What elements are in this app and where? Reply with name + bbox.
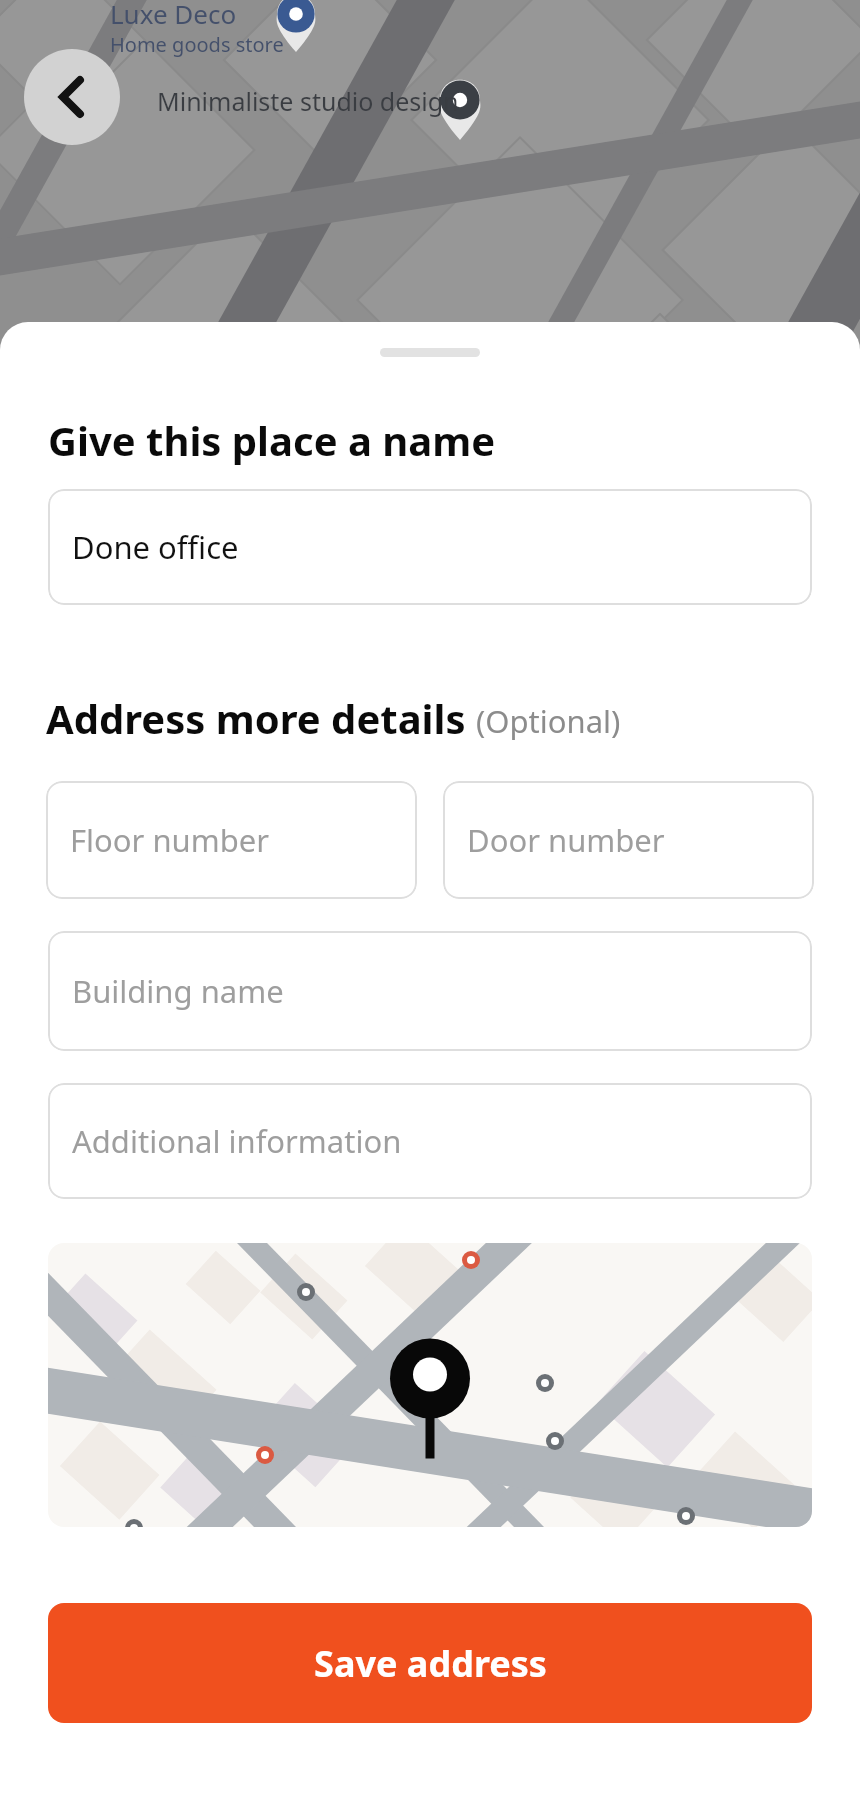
staticText: Floor number xyxy=(70,819,270,861)
staticText: Save address xyxy=(314,1639,547,1688)
staticText: Done office xyxy=(72,526,239,568)
button[interactable]: Save address xyxy=(48,1603,812,1723)
button[interactable]: Floor number xyxy=(46,781,417,899)
staticText: Address more details xyxy=(46,691,466,745)
staticText: Minimaliste studio design xyxy=(157,84,459,118)
staticText: Door number xyxy=(467,819,665,861)
staticText: Luxe Deco xyxy=(110,0,237,31)
button[interactable]: Done office xyxy=(48,489,812,605)
staticText: Building name xyxy=(72,970,284,1012)
staticText: Home goods store xyxy=(110,31,284,58)
button[interactable]: Building name xyxy=(48,931,812,1051)
staticText: Additional information xyxy=(72,1120,402,1162)
button[interactable]: Back xyxy=(24,49,120,145)
staticText: Give this place a name xyxy=(48,413,496,467)
staticText: (Optional) xyxy=(476,700,621,742)
button[interactable]: Door number xyxy=(443,781,814,899)
button[interactable]: Map location xyxy=(48,1243,812,1527)
button[interactable]: Additional information xyxy=(48,1083,812,1199)
